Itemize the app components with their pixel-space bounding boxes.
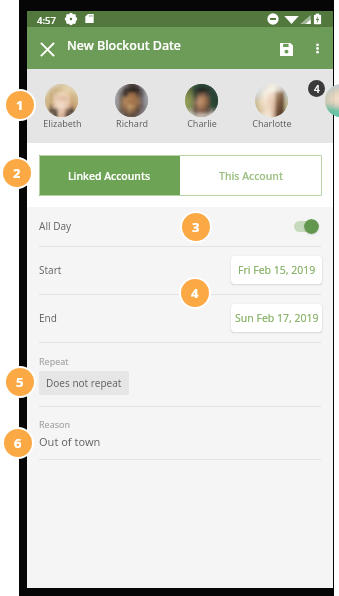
staticText: Fri Feb 15, 2019	[238, 263, 316, 277]
staticText: Out of town	[39, 434, 101, 449]
staticText: 4	[314, 82, 320, 96]
staticText: Elizabeth	[43, 117, 82, 129]
button[interactable]: End	[27, 294, 333, 342]
staticText: This Account	[219, 169, 283, 183]
staticText: End	[39, 311, 57, 325]
button[interactable]: More options	[300, 31, 334, 65]
staticText: Charlie	[187, 117, 217, 129]
staticText: Richard	[116, 117, 148, 129]
button[interactable]: Charlie	[174, 79, 230, 134]
staticText: Linked Accounts	[68, 169, 151, 183]
button[interactable]: Sun Feb 17, 2019	[231, 304, 322, 332]
staticText: 3	[192, 218, 200, 236]
staticText: 4:57	[37, 14, 56, 27]
staticText: Repeat	[39, 355, 69, 367]
button[interactable]: Fri Feb 15, 2019	[231, 256, 322, 284]
staticText: 4	[191, 284, 199, 302]
staticText: 1	[16, 96, 24, 114]
staticText: Reason	[39, 418, 71, 430]
button[interactable]: Elizabeth	[34, 79, 90, 134]
button[interactable]: Charlotte	[244, 79, 300, 134]
button[interactable]: All Day	[27, 207, 333, 246]
button[interactable]: Linked Accounts	[39, 155, 180, 196]
staticText: Start	[39, 263, 62, 277]
staticText: 2	[13, 164, 21, 182]
staticText: Does not repeat	[46, 376, 122, 390]
staticText: 5	[16, 373, 24, 391]
staticText: New Blockout Date	[67, 37, 182, 54]
staticText: All Day	[39, 219, 72, 233]
staticText: Charlotte	[252, 117, 292, 129]
button[interactable]: Repeat	[27, 342, 333, 406]
button[interactable]: Reason	[27, 406, 333, 459]
staticText: 6	[14, 434, 22, 452]
button[interactable]: Close	[29, 31, 66, 68]
button[interactable]: Start	[27, 246, 333, 294]
button[interactable]: Richard	[104, 79, 160, 134]
button[interactable]: This Account	[180, 155, 322, 196]
button[interactable]: Save	[268, 31, 304, 67]
staticText: Sun Feb 17, 2019	[235, 311, 319, 325]
